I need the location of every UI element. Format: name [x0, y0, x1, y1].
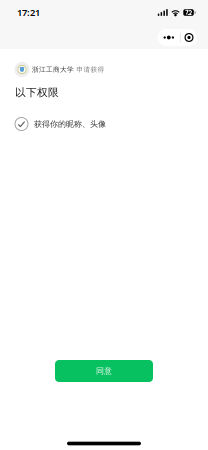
staticText: 浙江工商大学 — [32, 65, 74, 74]
staticText: 以下权限 — [15, 86, 59, 99]
staticText: 获得你的昵称、头像 — [34, 119, 106, 129]
button[interactable]: More options — [157, 29, 180, 46]
staticText: 同意 — [96, 366, 112, 376]
staticText: 申请获得 — [77, 65, 105, 74]
button[interactable]: 同意 — [55, 360, 153, 382]
staticText: 17:21 — [17, 6, 40, 19]
button[interactable]: Close mini program — [181, 29, 197, 46]
